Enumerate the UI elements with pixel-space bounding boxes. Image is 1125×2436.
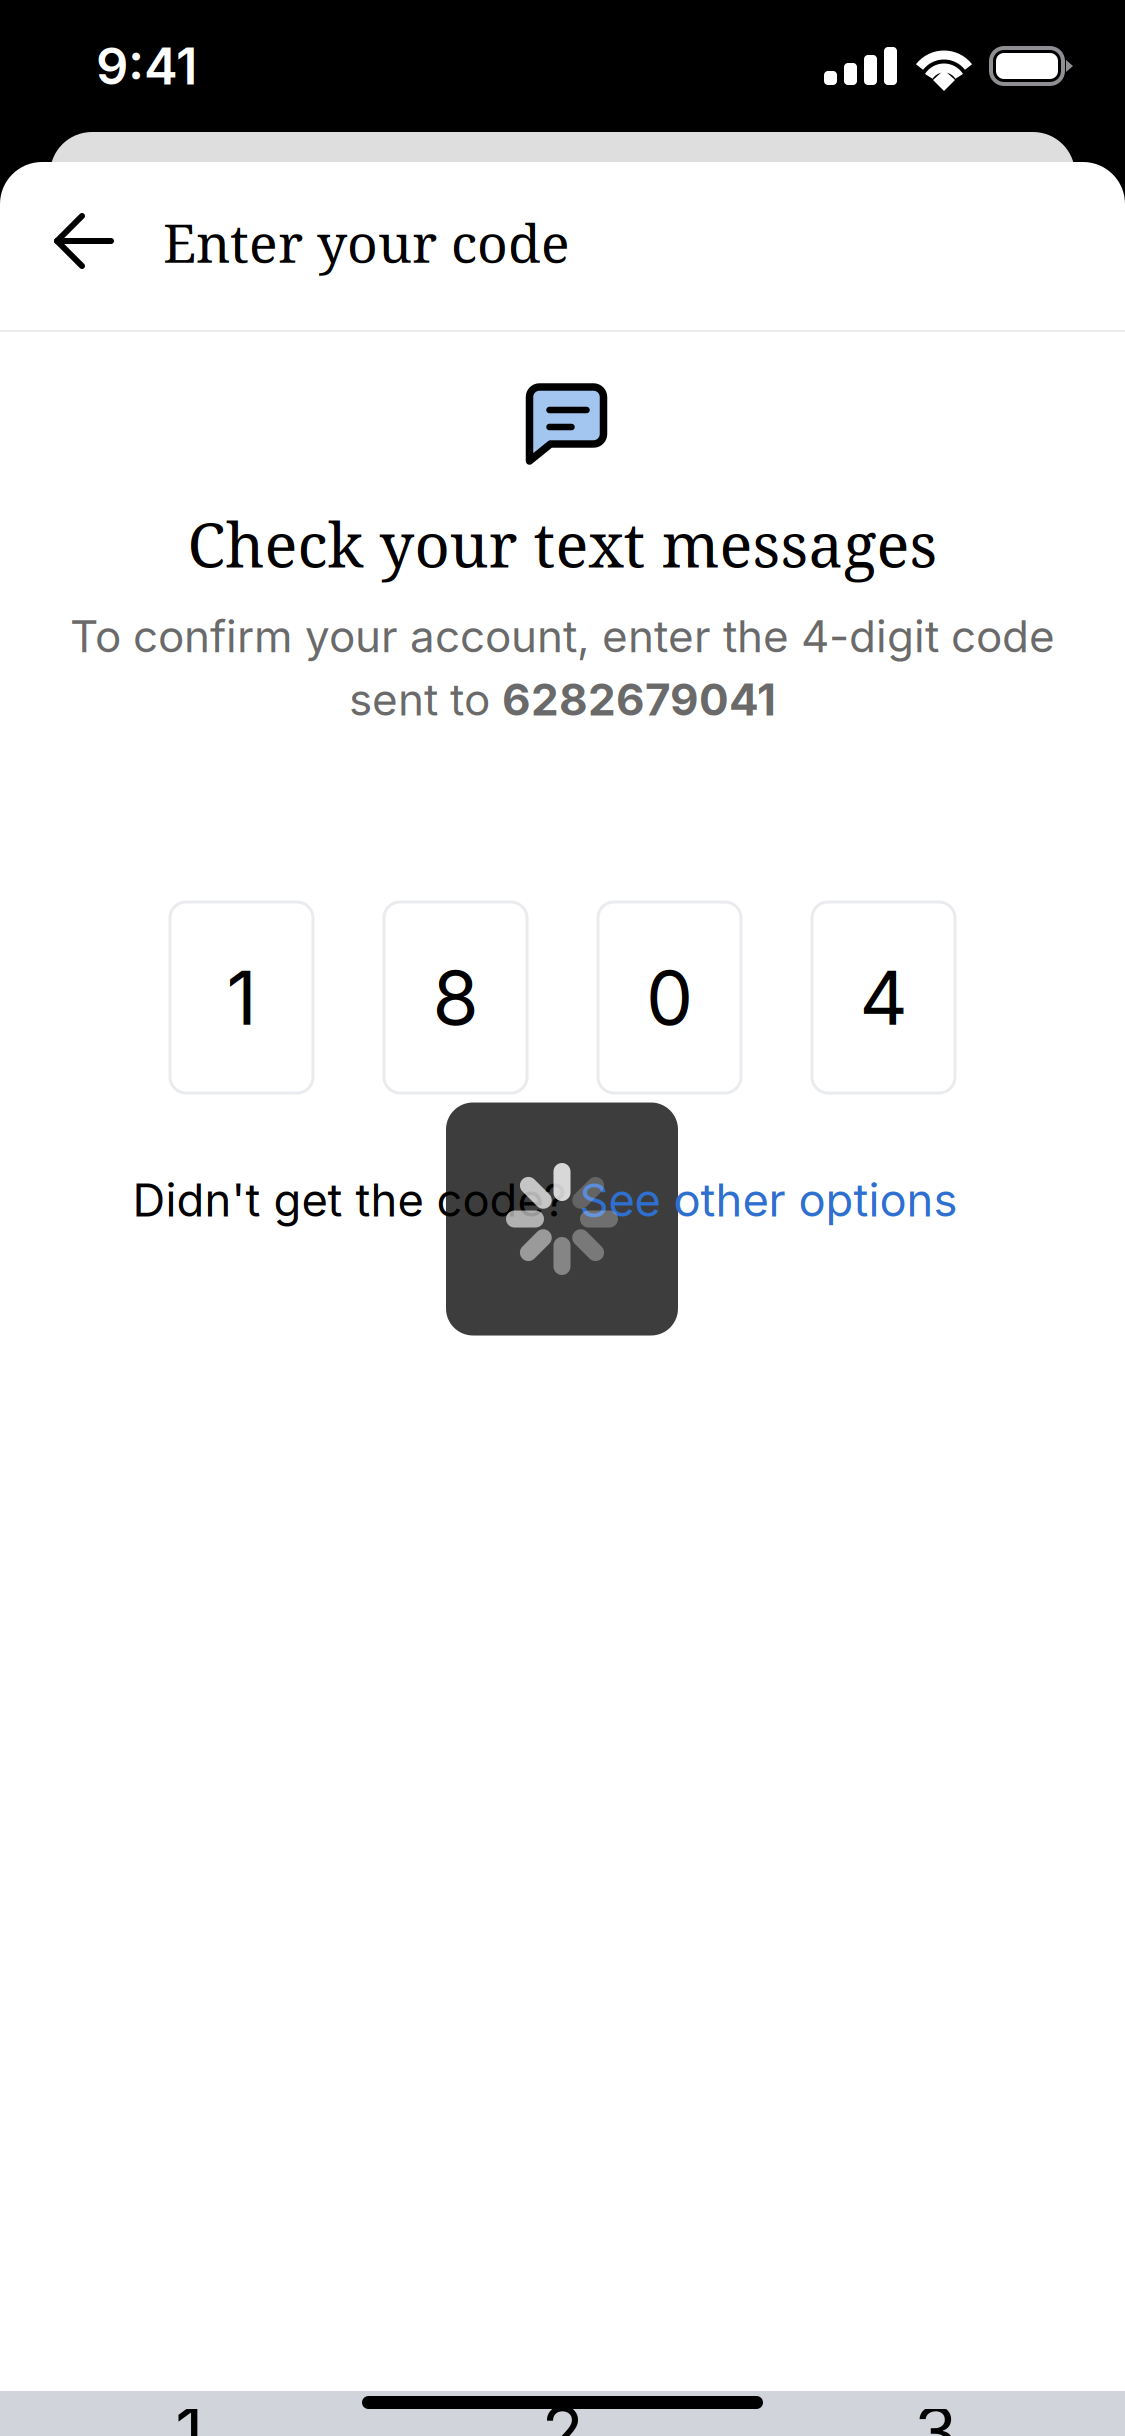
staticText: 9:41 — [96, 35, 197, 97]
staticText: See other options — [579, 1173, 957, 1227]
button[interactable]: 0 — [598, 902, 741, 1093]
staticText: Didn't get the code? — [132, 1173, 579, 1227]
button[interactable]: 2 — [385, 2409, 740, 2436]
staticText: Check your text messages — [187, 502, 937, 585]
button[interactable]: See other options — [579, 1173, 957, 1227]
button[interactable]: 4 — [812, 902, 955, 1093]
staticText: 4 — [859, 952, 907, 1043]
button[interactable]: 1 — [170, 902, 313, 1093]
staticText: 8 — [432, 952, 478, 1043]
staticText: Enter your code — [163, 206, 570, 278]
staticText: 1 — [226, 952, 256, 1043]
staticText: 6282679041 — [502, 673, 776, 726]
staticText: 3 — [914, 2390, 957, 2436]
staticText: 0 — [646, 952, 693, 1043]
button[interactable]: 8 — [384, 902, 527, 1093]
button[interactable]: Back — [28, 167, 140, 325]
button[interactable]: 1 — [12, 2409, 366, 2436]
staticText: 2 — [541, 2390, 583, 2436]
button[interactable]: 3 — [759, 2409, 1113, 2436]
staticText: To confirm your account, enter the 4-dig… — [70, 609, 1055, 663]
staticText: sent to — [349, 673, 502, 726]
staticText: 1 — [175, 2390, 203, 2436]
